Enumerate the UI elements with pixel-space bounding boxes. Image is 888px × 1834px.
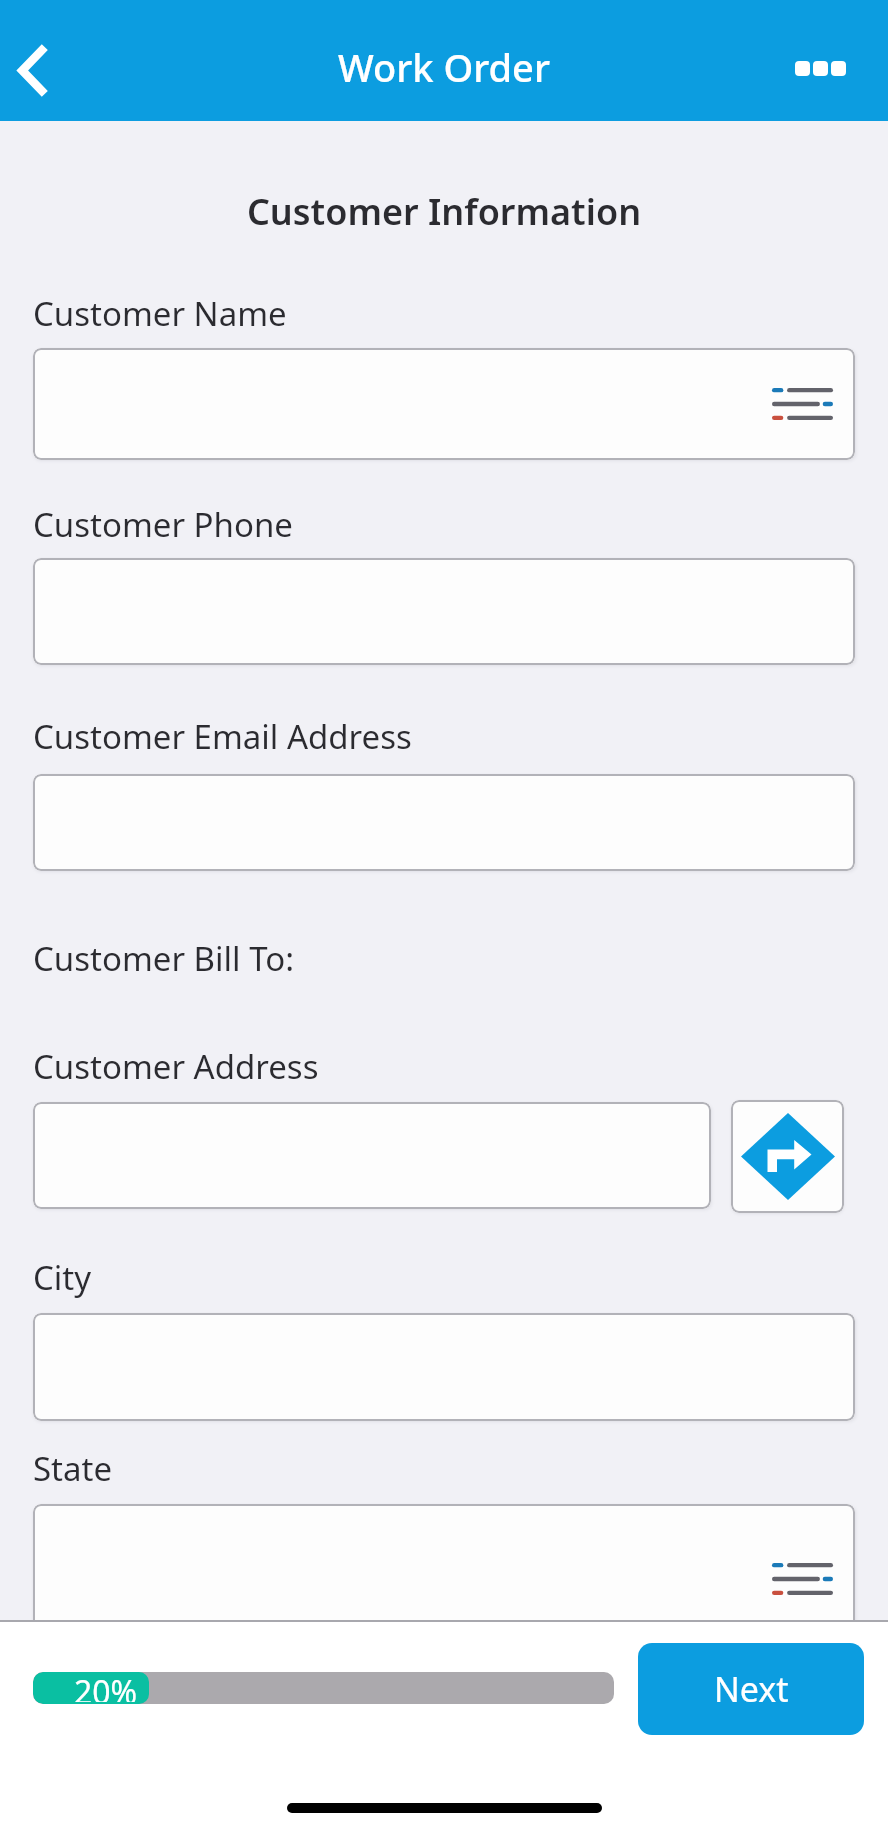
staticText: City [33,1255,533,1300]
staticText: Work Order [338,41,550,93]
staticText: Customer Bill To: [33,936,533,981]
staticText: 20% [74,1672,138,1702]
button[interactable] [33,348,855,460]
button[interactable]: Back [0,22,81,118]
button[interactable] [33,1102,711,1209]
staticText: Next [714,1666,789,1712]
staticText: State [33,1446,533,1491]
button[interactable] [33,1504,855,1620]
button[interactable] [33,558,855,665]
staticText: Customer Phone [33,502,533,547]
button[interactable]: More options [772,20,868,116]
staticText: Customer Address [33,1044,533,1089]
staticText: Customer Email Address [33,714,533,759]
button[interactable]: Directions [731,1100,844,1213]
button[interactable] [33,774,855,871]
button[interactable] [33,1313,855,1421]
button[interactable]: Next [638,1643,864,1735]
staticText: Customer Name [33,291,533,336]
staticText: Customer Information [0,187,888,236]
